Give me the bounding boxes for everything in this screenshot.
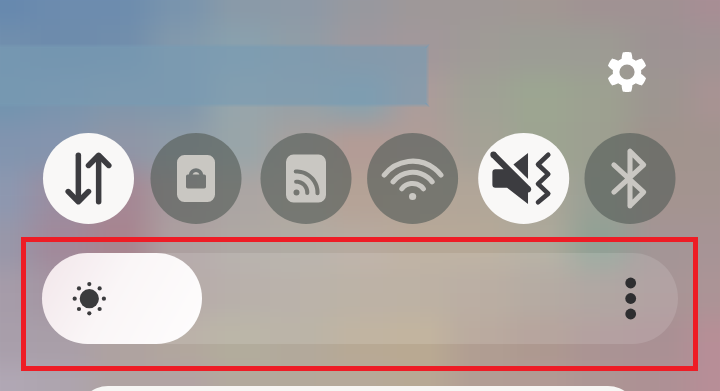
button[interactable]: Auto rotate lock bbox=[150, 133, 241, 224]
button[interactable]: Sound mode bbox=[478, 133, 569, 224]
button[interactable]: Mobile data bbox=[43, 133, 134, 224]
button[interactable]: Bluetooth bbox=[584, 133, 675, 224]
button[interactable]: Wi-Fi bbox=[367, 133, 458, 224]
button[interactable]: Hotspot bbox=[260, 133, 351, 224]
button[interactable]: Settings bbox=[603, 49, 649, 95]
